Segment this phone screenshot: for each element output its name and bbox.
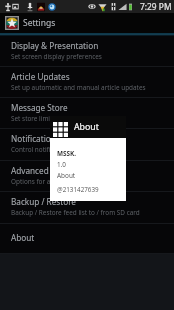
button[interactable]: About [0, 224, 174, 254]
button[interactable]: Advanced [0, 161, 174, 192]
staticText: About [57, 171, 76, 180]
staticText: Backup / Restore [11, 196, 76, 207]
staticText: 7:29 PM [140, 1, 172, 12]
staticText: Notifications [11, 133, 60, 144]
staticText: MSSK. [57, 149, 77, 158]
staticText: About [74, 121, 99, 133]
staticText: Advanced [11, 165, 49, 176]
button[interactable]: Display & Presentation [0, 36, 174, 67]
staticText: @2131427639 [57, 185, 99, 194]
staticText: Set up automatic and manual article upda… [11, 83, 146, 92]
staticText: 1.0 [57, 160, 67, 169]
staticText: Set store limit, automatic cleanup, etc. [11, 114, 126, 123]
staticText: Set screen display preferences [11, 52, 102, 61]
button[interactable]: Article Updates [0, 67, 174, 98]
staticText: Control notification settings [11, 145, 95, 154]
staticText: Article Updates [11, 71, 70, 82]
staticText: Message Store [11, 102, 68, 113]
staticText: Settings [23, 17, 56, 29]
staticText: Backup / Restore feed list to / from SD … [11, 208, 140, 217]
button[interactable]: Notifications [0, 129, 174, 161]
staticText: About [11, 232, 35, 243]
button[interactable]: Backup / Restore [0, 192, 174, 224]
staticText: Options for advanced users [11, 177, 94, 186]
staticText: Display & Presentation [11, 40, 99, 51]
button[interactable]: Message Store [0, 98, 174, 129]
